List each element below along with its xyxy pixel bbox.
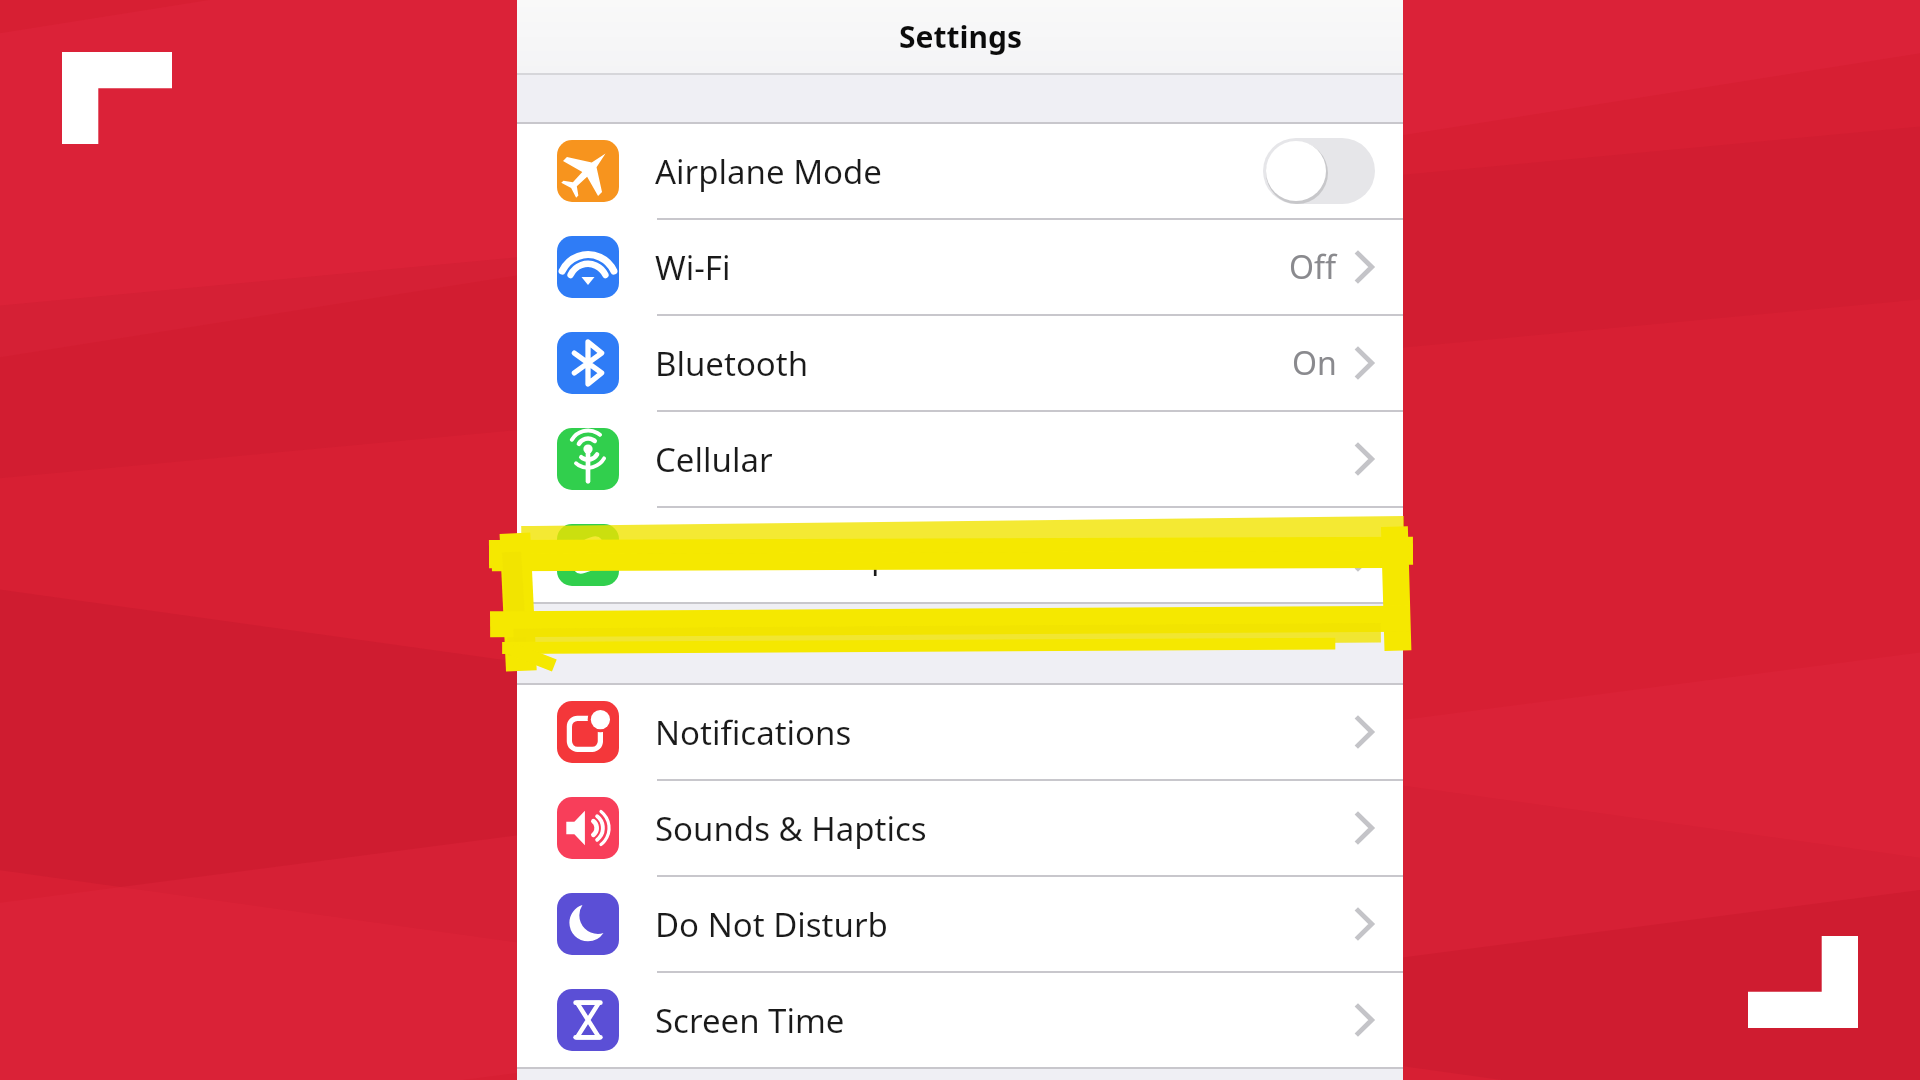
button[interactable]: Personal Hotspot (517, 508, 1403, 602)
button[interactable]: Screen Time (517, 973, 1403, 1067)
staticText: Sounds & Haptics (655, 806, 927, 851)
staticText: Settings (899, 16, 1022, 57)
staticText: On (1292, 341, 1337, 385)
button[interactable]: Wi-Fi (517, 220, 1403, 314)
staticText: Screen Time (655, 998, 845, 1043)
button[interactable]: Sounds & Haptics (517, 781, 1403, 875)
staticText: Off (1289, 245, 1337, 289)
button[interactable]: Cellular (517, 412, 1403, 506)
button[interactable]: Bluetooth (517, 316, 1403, 410)
button[interactable]: Airplane Mode (517, 124, 1403, 218)
staticText: Wi-Fi (655, 245, 731, 290)
button[interactable] (1263, 138, 1375, 204)
staticText: Notifications (655, 710, 852, 755)
button[interactable]: Do Not Disturb (517, 877, 1403, 971)
staticText: Personal Hotspot (655, 533, 924, 578)
button[interactable]: Notifications (517, 685, 1403, 779)
staticText: Airplane Mode (655, 149, 882, 194)
staticText: Do Not Disturb (655, 902, 888, 947)
staticText: Cellular (655, 437, 773, 482)
staticText: Bluetooth (655, 341, 809, 386)
